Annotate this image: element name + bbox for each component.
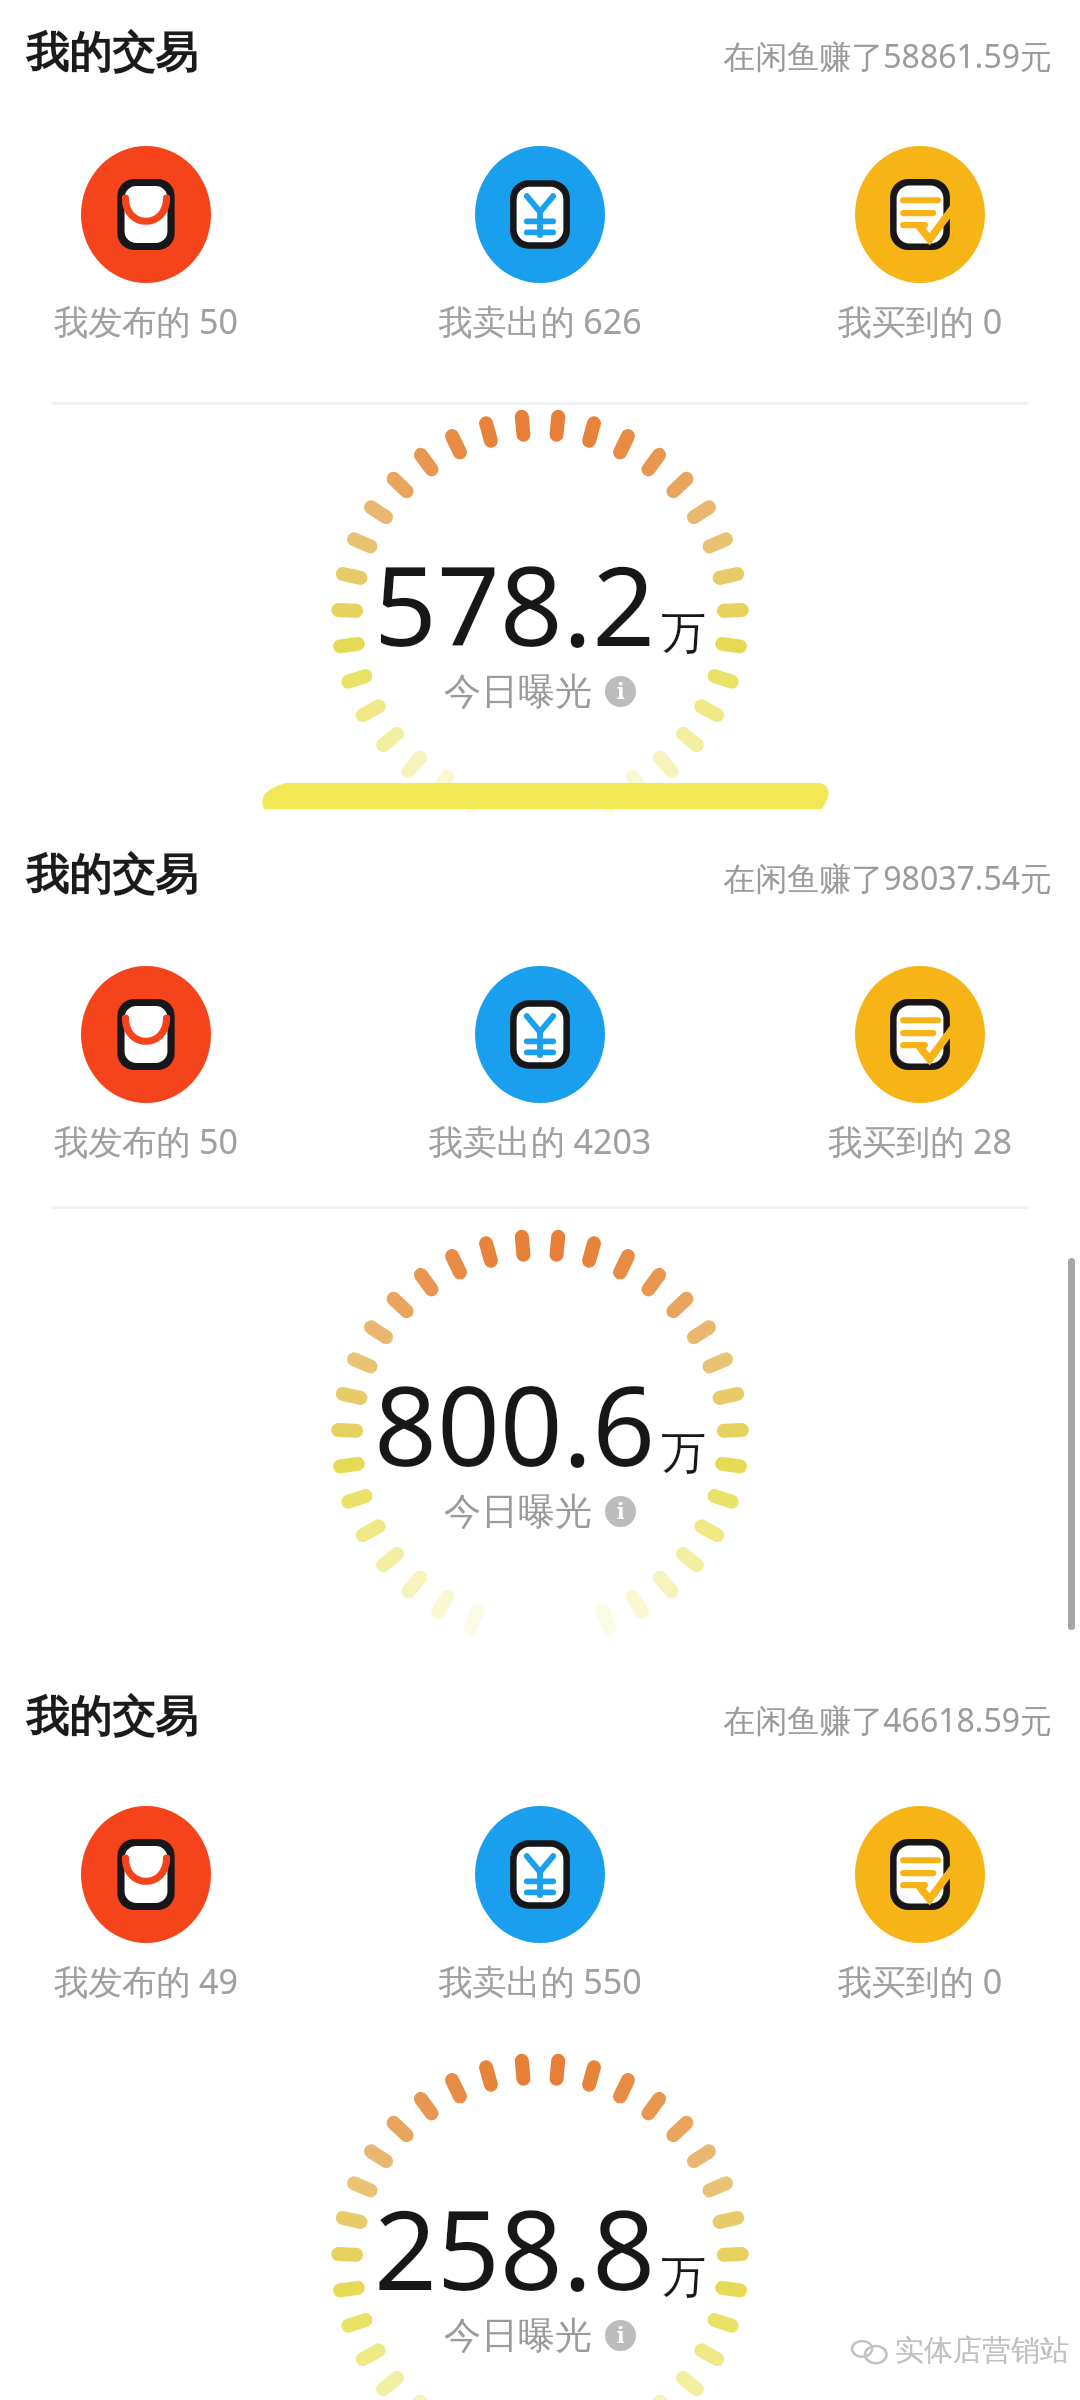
staticText: 在闲鱼赚了46618.59元 xyxy=(580,1698,1052,1742)
staticText: i xyxy=(617,1497,625,1526)
staticText: 我买到的 0 xyxy=(730,298,1080,344)
staticText: 我卖出的 626 xyxy=(350,298,730,344)
button[interactable]: 我的交易 xyxy=(22,846,202,904)
button[interactable]: 今日曝光 xyxy=(440,664,640,719)
staticText: 我买到的 0 xyxy=(730,1958,1080,2004)
button[interactable]: 我卖出的 xyxy=(475,146,605,283)
button[interactable]: 在闲鱼赚了58861.59元 xyxy=(580,34,1052,78)
button[interactable]: 今日曝光 xyxy=(440,1484,640,1539)
staticText: 578.2 xyxy=(374,528,656,678)
button[interactable]: 我买到的 xyxy=(855,146,985,283)
staticText: 258.8 xyxy=(374,2172,656,2322)
other: 说明 xyxy=(605,2320,636,2351)
staticText: 我的交易 xyxy=(26,1690,198,1744)
staticText: 我的交易 xyxy=(26,848,198,902)
button[interactable]: 今日曝光 xyxy=(440,2308,640,2363)
button[interactable]: 我买到的 28 xyxy=(730,1118,1080,1164)
button[interactable]: 我发布的 xyxy=(81,966,211,1103)
staticText: i xyxy=(617,2321,625,2350)
button[interactable]: 我卖出的 626 xyxy=(350,298,730,344)
button[interactable]: 我买到的 0 xyxy=(730,298,1080,344)
staticText: 我发布的 50 xyxy=(0,1118,336,1164)
staticText: 我买到的 28 xyxy=(730,1118,1080,1164)
button[interactable]: 我卖出的 550 xyxy=(350,1958,730,2004)
button[interactable]: 我发布的 xyxy=(81,1806,211,1943)
button[interactable]: 我的交易 xyxy=(22,24,202,82)
staticText: 今日曝光 xyxy=(444,668,592,715)
other: 说明 xyxy=(605,1496,636,1527)
button[interactable]: 我买到的 xyxy=(855,966,985,1103)
button[interactable]: 在闲鱼赚了46618.59元 xyxy=(580,1698,1052,1742)
staticText: 今日曝光 xyxy=(444,2312,592,2359)
staticText: 800.6 xyxy=(374,1348,656,1498)
button[interactable]: 我发布的 50 xyxy=(0,298,336,344)
staticText: 今日曝光 xyxy=(444,1488,592,1535)
button[interactable]: 在闲鱼赚了98037.54元 xyxy=(580,856,1052,900)
staticText: 我发布的 50 xyxy=(0,298,336,344)
other: 说明 xyxy=(605,676,636,707)
button[interactable]: 我买到的 0 xyxy=(730,1958,1080,2004)
staticText: 实体店营销站 xyxy=(895,2332,1069,2369)
button[interactable]: 我发布的 xyxy=(81,146,211,283)
staticText: i xyxy=(617,677,625,706)
staticText: 我的交易 xyxy=(26,26,198,80)
button[interactable]: 我发布的 50 xyxy=(0,1118,336,1164)
staticText: 我卖出的 550 xyxy=(350,1958,730,2004)
button[interactable]: 我卖出的 xyxy=(475,1806,605,1943)
button[interactable]: 我卖出的 4203 xyxy=(350,1118,730,1164)
staticText: 万 xyxy=(661,2249,706,2306)
button[interactable]: 我的交易 xyxy=(22,1688,202,1746)
button[interactable]: 我发布的 49 xyxy=(0,1958,336,2004)
button[interactable]: 我买到的 xyxy=(855,1806,985,1943)
staticText: 在闲鱼赚了58861.59元 xyxy=(580,34,1052,78)
staticText: 我发布的 49 xyxy=(0,1958,336,2004)
staticText: 万 xyxy=(661,1425,706,1482)
button[interactable]: 我卖出的 xyxy=(475,966,605,1103)
staticText: 在闲鱼赚了98037.54元 xyxy=(580,856,1052,900)
staticText: 万 xyxy=(661,605,706,662)
staticText: 我卖出的 4203 xyxy=(350,1118,730,1164)
